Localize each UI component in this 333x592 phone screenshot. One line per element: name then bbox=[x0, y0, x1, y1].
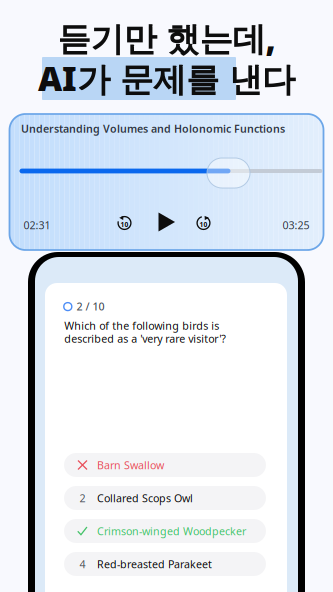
button[interactable]: Play bbox=[154, 210, 178, 234]
staticText: Crimson-winged Woodpecker bbox=[97, 524, 246, 538]
staticText: Which of the following birds is bbox=[64, 318, 219, 333]
button[interactable]: 2 bbox=[64, 486, 266, 510]
staticText: 2 bbox=[79, 491, 85, 505]
button[interactable]: Crimson-winged Woodpecker bbox=[64, 519, 266, 543]
button[interactable]: 4 bbox=[64, 552, 266, 576]
staticText: 2 / 10 bbox=[76, 299, 104, 313]
staticText: 03:25 bbox=[282, 218, 309, 232]
staticText: Understanding Volumes and Holonomic Func… bbox=[21, 121, 285, 136]
staticText: 02:31 bbox=[23, 218, 50, 232]
staticText: 10 bbox=[199, 220, 207, 229]
staticText: described as a 'very rare visitor'? bbox=[64, 331, 226, 346]
staticText: AI가 문제를 낸다 bbox=[38, 56, 295, 100]
button[interactable]: Barn Swallow bbox=[64, 453, 266, 477]
staticText: Collared Scops Owl bbox=[97, 491, 193, 505]
button[interactable]: Rewind 10 seconds bbox=[114, 213, 134, 233]
button[interactable]: Forward 10 seconds bbox=[193, 213, 213, 233]
staticText: 4 bbox=[79, 557, 85, 571]
staticText: Red-breasted Parakeet bbox=[97, 557, 212, 571]
staticText: 듣기만 했는데, bbox=[57, 16, 275, 60]
staticText: Barn Swallow bbox=[97, 458, 164, 472]
staticText: 10 bbox=[120, 220, 128, 229]
